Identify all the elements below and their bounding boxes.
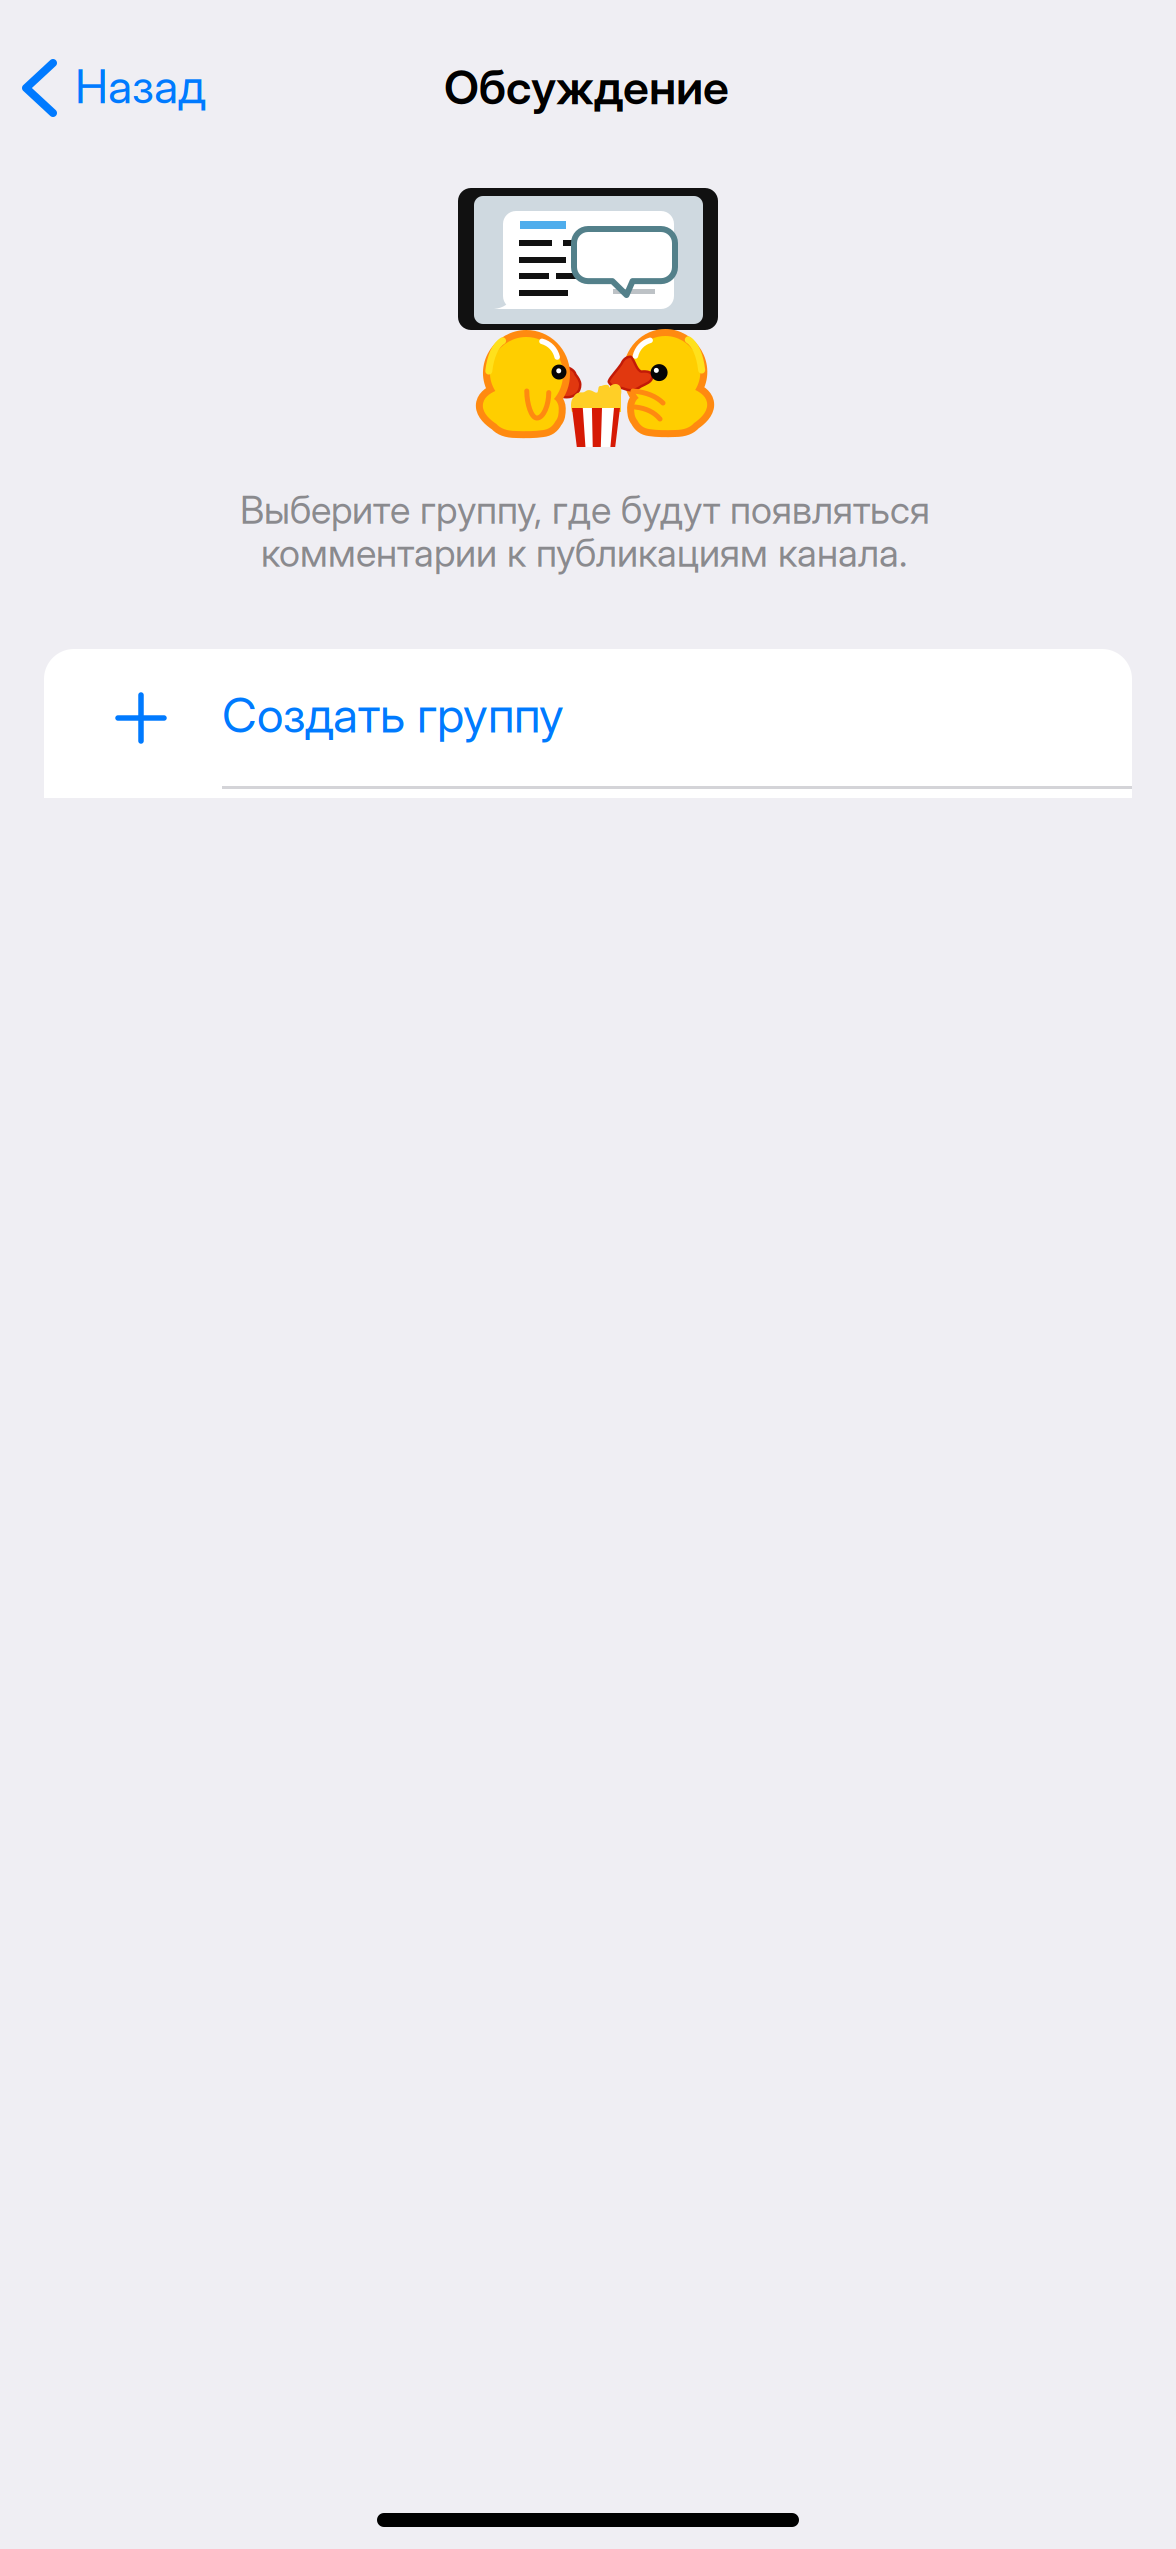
staticText: Обсуждение bbox=[444, 59, 729, 115]
staticText: Назад bbox=[75, 58, 206, 114]
staticText: Создать группу bbox=[222, 686, 564, 744]
staticText: Выберите группу, где будут появляться bbox=[240, 487, 930, 533]
staticText: комментарии к публикациям канала. bbox=[261, 530, 907, 576]
button[interactable]: Назад bbox=[0, 0, 250, 176]
button[interactable]: Создать группу bbox=[44, 649, 1132, 798]
